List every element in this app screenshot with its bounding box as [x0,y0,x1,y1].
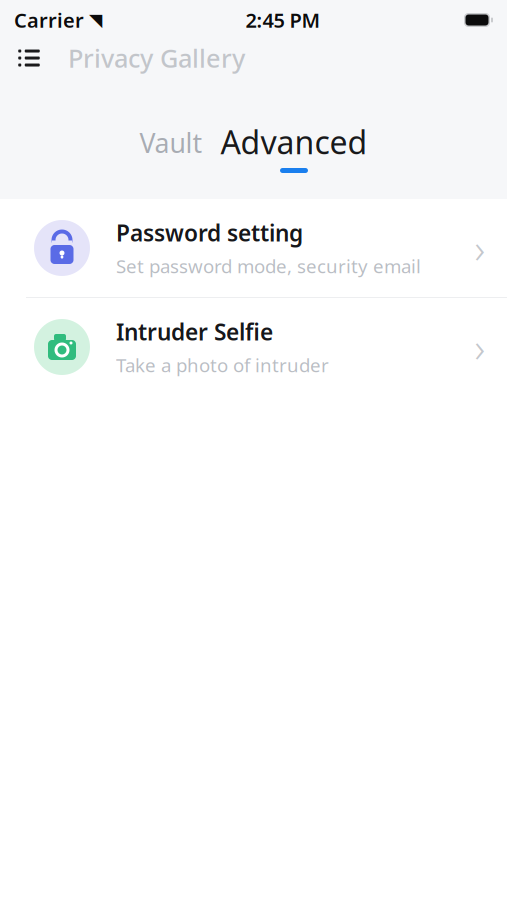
staticText: 2:45 PM [245,7,320,33]
button[interactable]: Menu [0,36,54,80]
staticText: Set password mode, security email [116,254,421,278]
staticText: › [474,320,485,373]
staticText: › [474,221,485,274]
button[interactable]: Advanced [220,120,367,173]
button[interactable]: Password setting [0,199,507,298]
staticText: Carrier [14,7,84,33]
button[interactable]: Vault [139,121,202,172]
staticText: Take a photo of intruder [116,353,329,377]
staticText: Vault [139,125,202,160]
staticText: Password setting [116,218,303,248]
staticText: Advanced [220,120,367,163]
staticText: Intruder Selfie [116,317,273,347]
staticText: ◥ [89,10,102,30]
button[interactable]: Intruder Selfie [0,298,507,397]
staticText: Privacy Gallery [68,41,245,75]
